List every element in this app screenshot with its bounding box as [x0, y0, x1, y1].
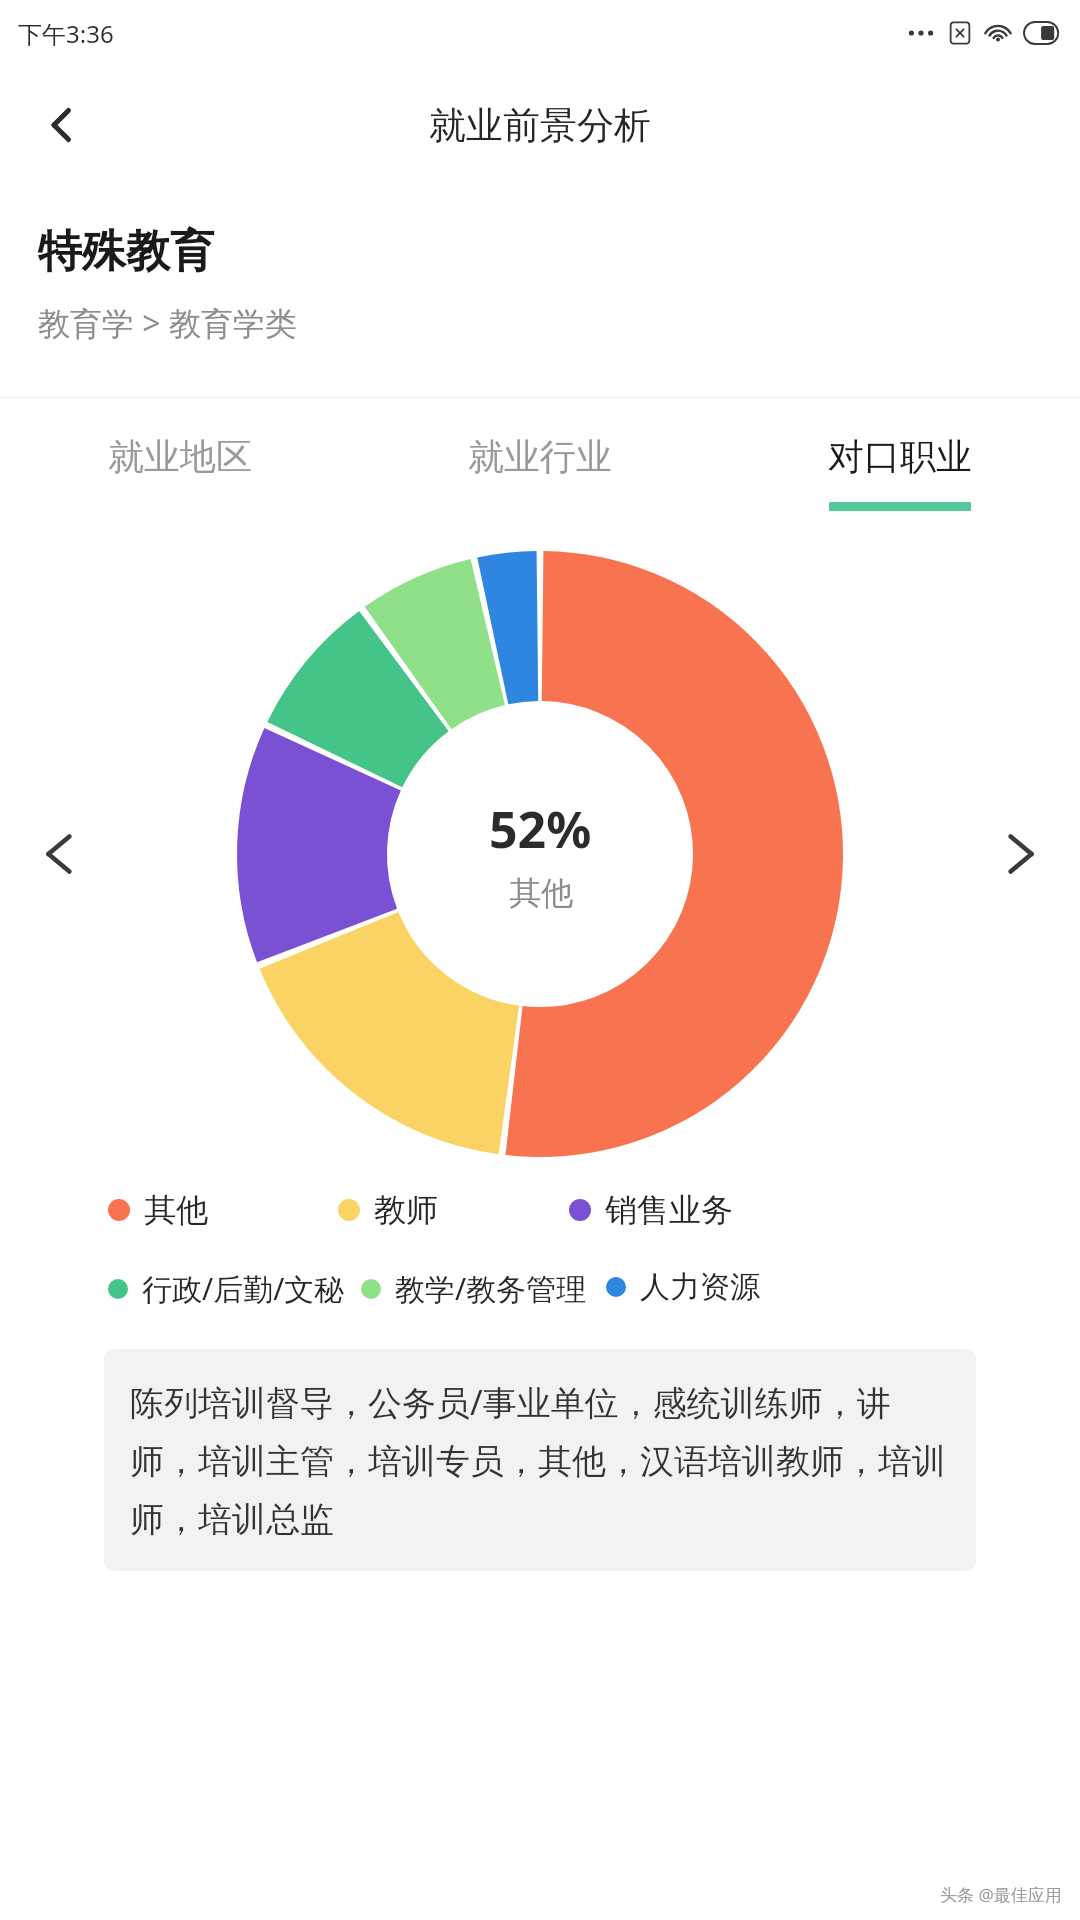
staticText: 就业地区: [108, 434, 252, 479]
staticText: 销售业务: [605, 1190, 733, 1230]
staticText: 其他: [144, 1190, 208, 1230]
staticText: 陈列培训督导，公务员/事业单位，感统训练师，讲师，培训主管，培训专员，其他，汉语…: [130, 1379, 950, 1541]
button[interactable]: Next: [984, 819, 1054, 889]
button[interactable]: 对口职业: [720, 398, 1080, 544]
staticText: 教学/教务管理: [395, 1268, 587, 1309]
button[interactable]: 教学/教务管理: [361, 1268, 587, 1309]
staticText: 头条 @最佳应用: [940, 1883, 1062, 1906]
button[interactable]: 就业地区: [0, 398, 360, 544]
button[interactable]: Previous: [26, 819, 96, 889]
staticText: 下午3:36: [18, 17, 114, 50]
staticText: 对口职业: [828, 434, 972, 479]
staticText: 人力资源: [640, 1268, 760, 1306]
button[interactable]: 销售业务: [569, 1190, 733, 1230]
button[interactable]: 人力资源: [606, 1268, 760, 1306]
button[interactable]: 教师: [338, 1190, 438, 1230]
button[interactable]: Back: [36, 97, 92, 153]
button[interactable]: 行政/后勤/文秘: [108, 1268, 345, 1309]
button[interactable]: 就业行业: [360, 398, 720, 544]
staticText: 52%: [489, 795, 592, 863]
staticText: 行政/后勤/文秘: [142, 1268, 345, 1309]
staticText: 特殊教育: [38, 224, 214, 279]
staticText: 就业前景分析: [429, 102, 651, 149]
button[interactable]: 其他: [108, 1190, 208, 1230]
staticText: 就业行业: [468, 434, 612, 479]
staticText: 教育学 > 教育学类: [38, 301, 297, 345]
staticText: 其他: [509, 873, 573, 913]
staticText: 教师: [374, 1190, 438, 1230]
